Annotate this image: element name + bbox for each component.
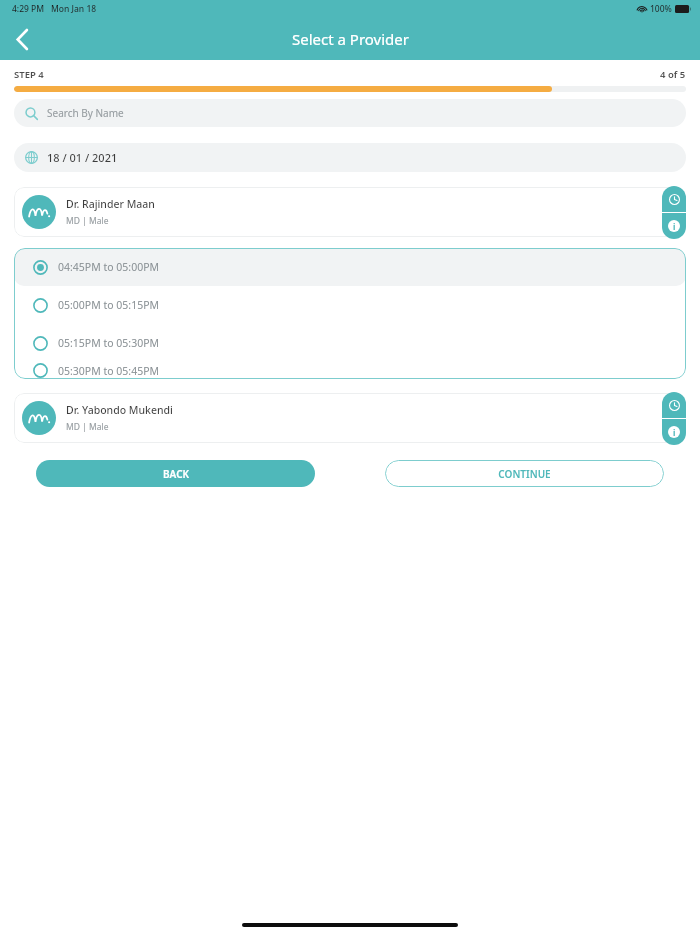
- button[interactable]: 05:15PM to 05:30PM: [14, 324, 686, 362]
- button[interactable]: Provider info: [662, 419, 686, 445]
- button[interactable]: Dr. Rajinder Maan: [14, 187, 686, 237]
- staticText: BACK: [163, 467, 189, 481]
- staticText: 4 of 5: [660, 68, 686, 81]
- button[interactable]: BACK: [36, 460, 315, 487]
- button[interactable]: View schedule: [662, 186, 686, 212]
- staticText: STEP 4: [14, 68, 44, 81]
- staticText: Select a Provider: [292, 29, 409, 49]
- staticText: CONTINUE: [498, 467, 551, 481]
- button[interactable]: CONTINUE: [385, 460, 664, 487]
- button[interactable]: View schedule: [662, 392, 686, 418]
- button[interactable]: Back: [8, 24, 38, 54]
- staticText: 100%: [650, 3, 672, 15]
- button[interactable]: 05:30PM to 05:45PM: [14, 362, 686, 379]
- staticText: 05:15PM to 05:30PM: [58, 336, 160, 350]
- staticText: MD | Male: [66, 421, 109, 433]
- staticText: Mon Jan 18: [51, 3, 97, 15]
- staticText: MD | Male: [66, 215, 109, 227]
- staticText: i: [673, 427, 676, 438]
- staticText: i: [673, 221, 676, 232]
- staticText: 05:30PM to 05:45PM: [58, 364, 160, 378]
- button[interactable]: Provider info: [662, 213, 686, 239]
- button[interactable]: Search By Name: [14, 99, 686, 127]
- staticText: Search By Name: [47, 106, 124, 120]
- button[interactable]: 18 / 01 / 2021: [14, 143, 686, 172]
- staticText: 18 / 01 / 2021: [47, 150, 118, 165]
- staticText: 4:29 PM: [12, 3, 45, 15]
- button[interactable]: Dr. Yabondo Mukendi: [14, 393, 686, 443]
- staticText: Dr. Rajinder Maan: [66, 197, 155, 211]
- button[interactable]: 05:00PM to 05:15PM: [14, 286, 686, 324]
- staticText: 04:45PM to 05:00PM: [58, 260, 160, 274]
- staticText: 05:00PM to 05:15PM: [58, 298, 160, 312]
- staticText: Dr. Yabondo Mukendi: [66, 403, 173, 417]
- button[interactable]: 04:45PM to 05:00PM: [14, 248, 686, 286]
